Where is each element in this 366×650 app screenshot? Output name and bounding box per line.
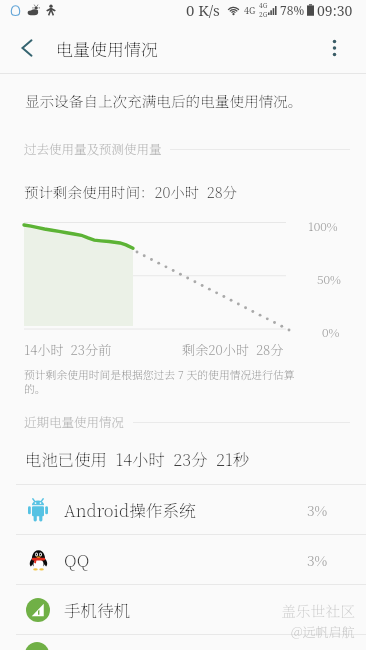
staticText: 预计剩余使用时间：20小时 28分 xyxy=(24,181,238,202)
button[interactable]: Android操作系统 xyxy=(0,485,366,534)
staticText: 09:30 xyxy=(317,1,353,20)
staticText: 14小时 23分前 xyxy=(24,340,112,359)
staticText: 剩余20小时 28分 xyxy=(182,340,284,359)
staticText: 100% xyxy=(308,217,338,234)
staticText: 0 K/s xyxy=(186,0,220,20)
staticText: 显示设备自上次充满电后的电量使用情况。 xyxy=(25,90,303,111)
staticText: 2G xyxy=(259,10,268,19)
staticText: 3% xyxy=(307,550,328,570)
staticText: QQ xyxy=(64,548,90,572)
button[interactable]: More options xyxy=(302,22,366,73)
staticText: 电池已使用 14小时 23分 21秒 xyxy=(25,447,250,471)
staticText: 4G xyxy=(259,1,268,10)
staticText: 预计剩余使用时间是根据您过去 7 天的使用情况进行估算的。 xyxy=(24,367,307,396)
button[interactable]: 手机待机 xyxy=(0,585,366,634)
staticText: 盖乐世社区 xyxy=(281,600,355,621)
button[interactable]: Back xyxy=(0,22,50,73)
staticText: 50% xyxy=(317,270,341,287)
staticText: 4G xyxy=(244,4,256,16)
staticText: 0% xyxy=(322,323,340,340)
staticText: 78% xyxy=(280,2,305,18)
staticText: 过去使用量及预测使用量 xyxy=(24,140,162,158)
staticText: 电量使用情况 xyxy=(56,36,158,60)
staticText: 近期电量使用情况 xyxy=(24,413,125,431)
staticText: Android操作系统 xyxy=(64,498,196,522)
button[interactable]: QQ xyxy=(0,535,366,584)
staticText: @远帆启航 xyxy=(291,622,355,641)
staticText: 手机待机 xyxy=(64,598,131,622)
staticText: 3% xyxy=(307,500,328,520)
